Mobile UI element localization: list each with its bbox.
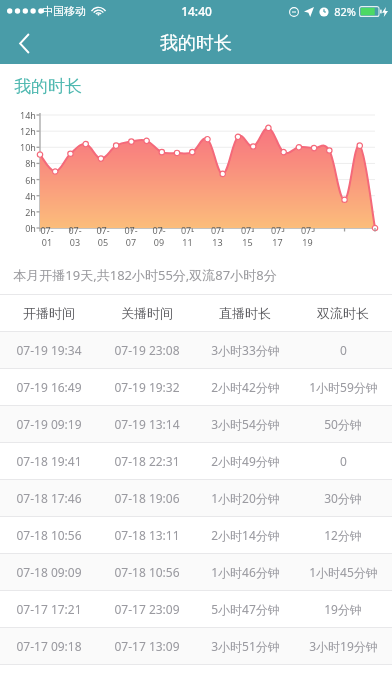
staticText: 2小时49分钟 <box>211 453 280 469</box>
button[interactable]: 07-17 17:21 <box>0 591 392 627</box>
staticText: 07-18 09:09 <box>16 564 82 580</box>
staticText: 1小时59分钟 <box>309 379 378 395</box>
staticText: 07-19 19:34 <box>16 342 82 358</box>
staticText: 07-17 17:21 <box>16 601 82 617</box>
staticText: 2h <box>25 206 36 218</box>
staticText: 12分钟 <box>324 527 362 543</box>
staticText: 12h <box>20 125 36 137</box>
staticText: 本月开播19天,共182小时55分,双流87小时8分 <box>13 266 277 284</box>
staticText: 1小时20分钟 <box>211 490 280 506</box>
staticText: 14:40 <box>181 3 212 19</box>
staticText: 07-18 13:11 <box>114 527 180 543</box>
staticText: 07-19 16:49 <box>16 379 82 395</box>
staticText: 中国移动 <box>42 4 86 18</box>
staticText: 07-18 22:31 <box>114 453 180 469</box>
staticText: 3小时33分钟 <box>211 342 280 358</box>
staticText: 07-17 09:18 <box>16 638 82 654</box>
staticText: 8h <box>25 157 36 169</box>
staticText: 07-17 13:09 <box>114 638 180 654</box>
button[interactable]: 07-18 10:56 <box>0 517 392 553</box>
staticText: 07-03 <box>68 224 82 248</box>
staticText: 07-18 17:46 <box>16 490 82 506</box>
staticText: 07-17 23:09 <box>114 601 180 617</box>
staticText: 19分钟 <box>324 601 362 617</box>
staticText: 6h <box>25 174 36 186</box>
button[interactable]: 07-18 09:09 <box>0 554 392 590</box>
staticText: 07-19 09:19 <box>16 416 82 432</box>
staticText: 0 <box>340 453 347 469</box>
staticText: 4h <box>25 190 36 202</box>
staticText: 14h <box>20 109 36 121</box>
staticText: 3小时54分钟 <box>211 416 280 432</box>
staticText: 2小时42分钟 <box>211 379 280 395</box>
staticText: 10h <box>20 141 36 153</box>
staticText: 我的时长 <box>160 32 232 55</box>
staticText: 1小时46分钟 <box>211 564 280 580</box>
staticText: 2小时14分钟 <box>211 527 280 543</box>
staticText: 开播时间 <box>23 305 75 321</box>
staticText: 关播时间 <box>121 305 173 321</box>
staticText: 0h <box>25 222 36 234</box>
staticText: 07-19 13:14 <box>114 416 180 432</box>
staticText: 30分钟 <box>324 490 362 506</box>
staticText: 07-07 <box>124 224 138 248</box>
staticText: 3小时51分钟 <box>211 638 280 654</box>
staticText: 82% <box>334 4 356 19</box>
staticText: 50分钟 <box>324 416 362 432</box>
button[interactable]: 07-19 19:34 <box>0 332 392 368</box>
staticText: 07-18 19:41 <box>16 453 82 469</box>
staticText: 双流时长 <box>317 305 369 321</box>
staticText: 07-19 19:32 <box>114 379 180 395</box>
staticText: 07-05 <box>96 224 110 248</box>
staticText: 直播时长 <box>219 305 271 321</box>
staticText: 07-18 10:56 <box>16 527 82 543</box>
staticText: 07-09 <box>152 224 166 248</box>
button[interactable]: 07-19 09:19 <box>0 406 392 442</box>
button[interactable]: Back <box>0 22 48 64</box>
staticText: 3小时19分钟 <box>309 638 378 654</box>
staticText: 07-19 <box>300 224 315 248</box>
staticText: 5小时47分钟 <box>211 601 280 617</box>
staticText: 07-18 10:56 <box>114 564 180 580</box>
staticText: 07-17 <box>270 224 285 248</box>
staticText: 0 <box>340 342 347 358</box>
staticText: 07-18 19:06 <box>114 490 180 506</box>
staticText: 07-11 <box>180 224 195 248</box>
staticText: 07-13 <box>210 224 225 248</box>
staticText: 我的时长 <box>14 76 82 97</box>
staticText: 07-19 23:08 <box>114 342 180 358</box>
staticText: 07-15 <box>240 224 255 248</box>
button[interactable]: 07-17 09:18 <box>0 628 392 664</box>
staticText: 07-01 <box>40 224 54 248</box>
button[interactable]: 07-18 19:41 <box>0 443 392 479</box>
button[interactable]: 07-19 16:49 <box>0 369 392 405</box>
button[interactable]: 07-18 17:46 <box>0 480 392 516</box>
staticText: 1小时45分钟 <box>309 564 378 580</box>
